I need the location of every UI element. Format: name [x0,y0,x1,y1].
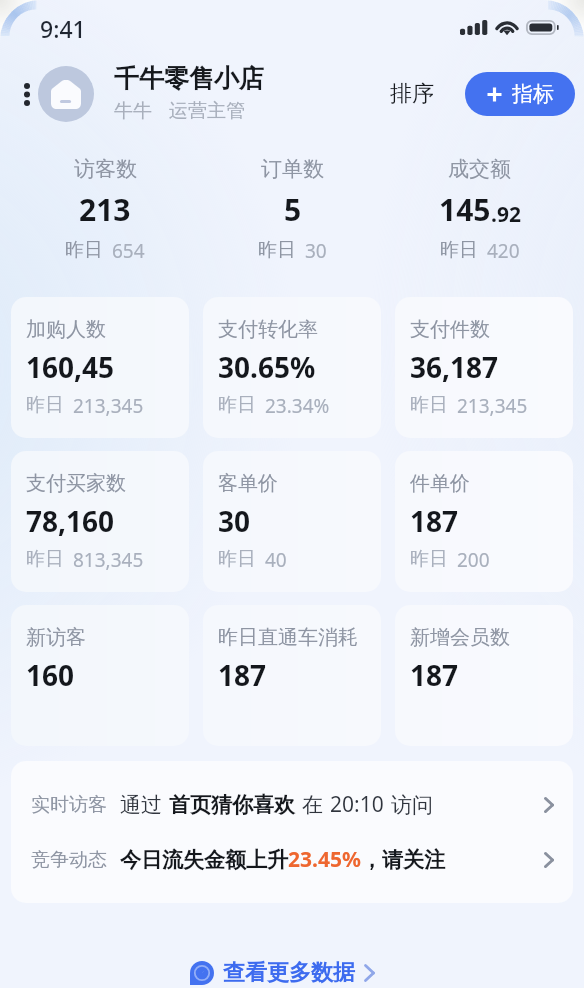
staticText: 在 [302,792,323,818]
staticText: 新增会员数 [410,625,510,650]
staticText: 40 [265,547,287,573]
staticText: 客单价 [218,471,278,496]
button[interactable]: 指标 [465,72,575,116]
staticText: 昨日 [440,238,478,262]
staticText: 支付件数 [410,317,490,342]
button[interactable]: 查看更多数据 [0,951,564,988]
staticText: 昨日 [65,238,103,262]
staticText: 213,345 [73,393,144,419]
staticText: 36,187 [410,348,499,386]
button[interactable]: 客单价 [203,451,381,592]
staticText: 新访客 [26,625,86,650]
staticText: 件单价 [410,471,470,496]
staticText: 昨日 [218,547,256,571]
staticText: 78,160 [26,502,115,540]
staticText: 首页猜你喜欢 [169,792,295,818]
staticText: 23.45% [288,845,361,874]
staticText: 160,45 [26,348,115,386]
staticText: 排序 [390,80,434,108]
button[interactable]: 排序 [380,72,444,116]
staticText: 昨日 [26,393,64,417]
button[interactable]: 加购人数 [11,297,189,438]
staticText: 通过 [120,792,162,818]
button[interactable]: 件单价 [395,451,573,592]
staticText: 昨日直通车消耗 [218,625,358,650]
staticText: 查看更多数据 [223,959,355,987]
staticText: 30.65% [218,348,316,386]
staticText: 加购人数 [26,317,106,342]
staticText: .92 [491,200,521,229]
staticText: 187 [410,656,459,694]
staticText: 牛牛 [114,99,152,123]
staticText: 订单数 [261,156,324,182]
button[interactable]: More options [14,74,40,114]
staticText: 千牛零售小店 [114,63,264,94]
staticText: 昨日 [410,547,448,571]
staticText: 竞争动态 [31,848,107,872]
staticText: 9:41 [40,13,86,44]
button[interactable]: 支付转化率 [203,297,381,438]
staticText: 昨日 [410,393,448,417]
staticText: 5 [284,189,302,230]
staticText: 420 [487,238,520,264]
button[interactable]: 支付买家数 [11,451,189,592]
staticText: 200 [457,547,490,573]
staticText: ，请关注 [361,847,445,873]
button[interactable]: 昨日直通车消耗 [203,605,381,746]
staticText: 20:10 [330,790,384,819]
staticText: 支付转化率 [218,317,318,342]
button[interactable]: 竞争动态 [11,832,573,887]
staticText: 654 [112,238,145,264]
staticText: 昨日 [218,393,256,417]
button[interactable]: 实时访客 [11,777,573,832]
staticText: 成交额 [448,156,511,182]
staticText: 支付买家数 [26,471,126,496]
staticText: 187 [218,656,267,694]
staticText: 昨日 [258,238,296,262]
staticText: 指标 [512,81,554,107]
staticText: 213 [79,189,131,230]
staticText: 23.34% [265,393,330,419]
staticText: 30 [218,502,251,540]
staticText: 实时访客 [31,793,107,817]
button[interactable]: 新访客 [11,605,189,746]
button[interactable]: 新增会员数 [395,605,573,746]
button[interactable]: Shop avatar [38,66,94,122]
staticText: 187 [410,502,459,540]
staticText: 160 [26,656,75,694]
staticText: 运营主管 [169,99,245,123]
staticText: 访客数 [74,156,137,182]
staticText: 访问 [391,792,433,818]
staticText: 213,345 [457,393,528,419]
staticText: 今日流失金额上升 [120,847,288,873]
staticText: 145 [439,189,491,230]
staticText: 813,345 [73,547,144,573]
staticText: 30 [305,238,327,264]
staticText: 昨日 [26,547,64,571]
button[interactable]: 支付件数 [395,297,573,438]
